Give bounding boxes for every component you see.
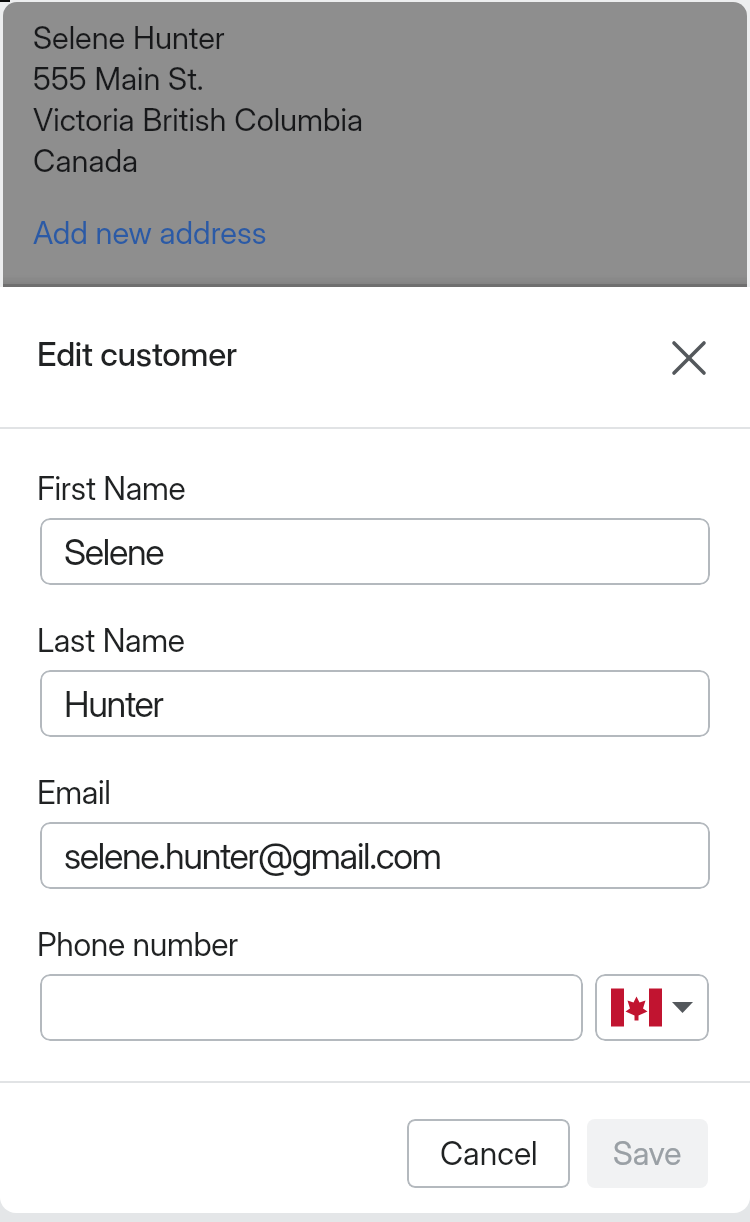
- staticText: Hunter: [64, 682, 163, 726]
- staticText: First Name: [37, 469, 186, 508]
- staticText: Last Name: [37, 621, 185, 660]
- staticText: Selene: [64, 530, 164, 574]
- staticText: selene.hunter@gmail.com: [64, 834, 441, 878]
- staticText: Phone number: [37, 925, 239, 964]
- staticText: Edit customer: [37, 334, 237, 374]
- staticText: Add new address: [33, 214, 267, 252]
- staticText: Save: [613, 1134, 682, 1173]
- staticText: Cancel: [440, 1134, 538, 1173]
- staticText: Selene Hunter 555 Main St. Victoria Brit…: [33, 19, 363, 179]
- staticText: Email: [37, 773, 111, 812]
